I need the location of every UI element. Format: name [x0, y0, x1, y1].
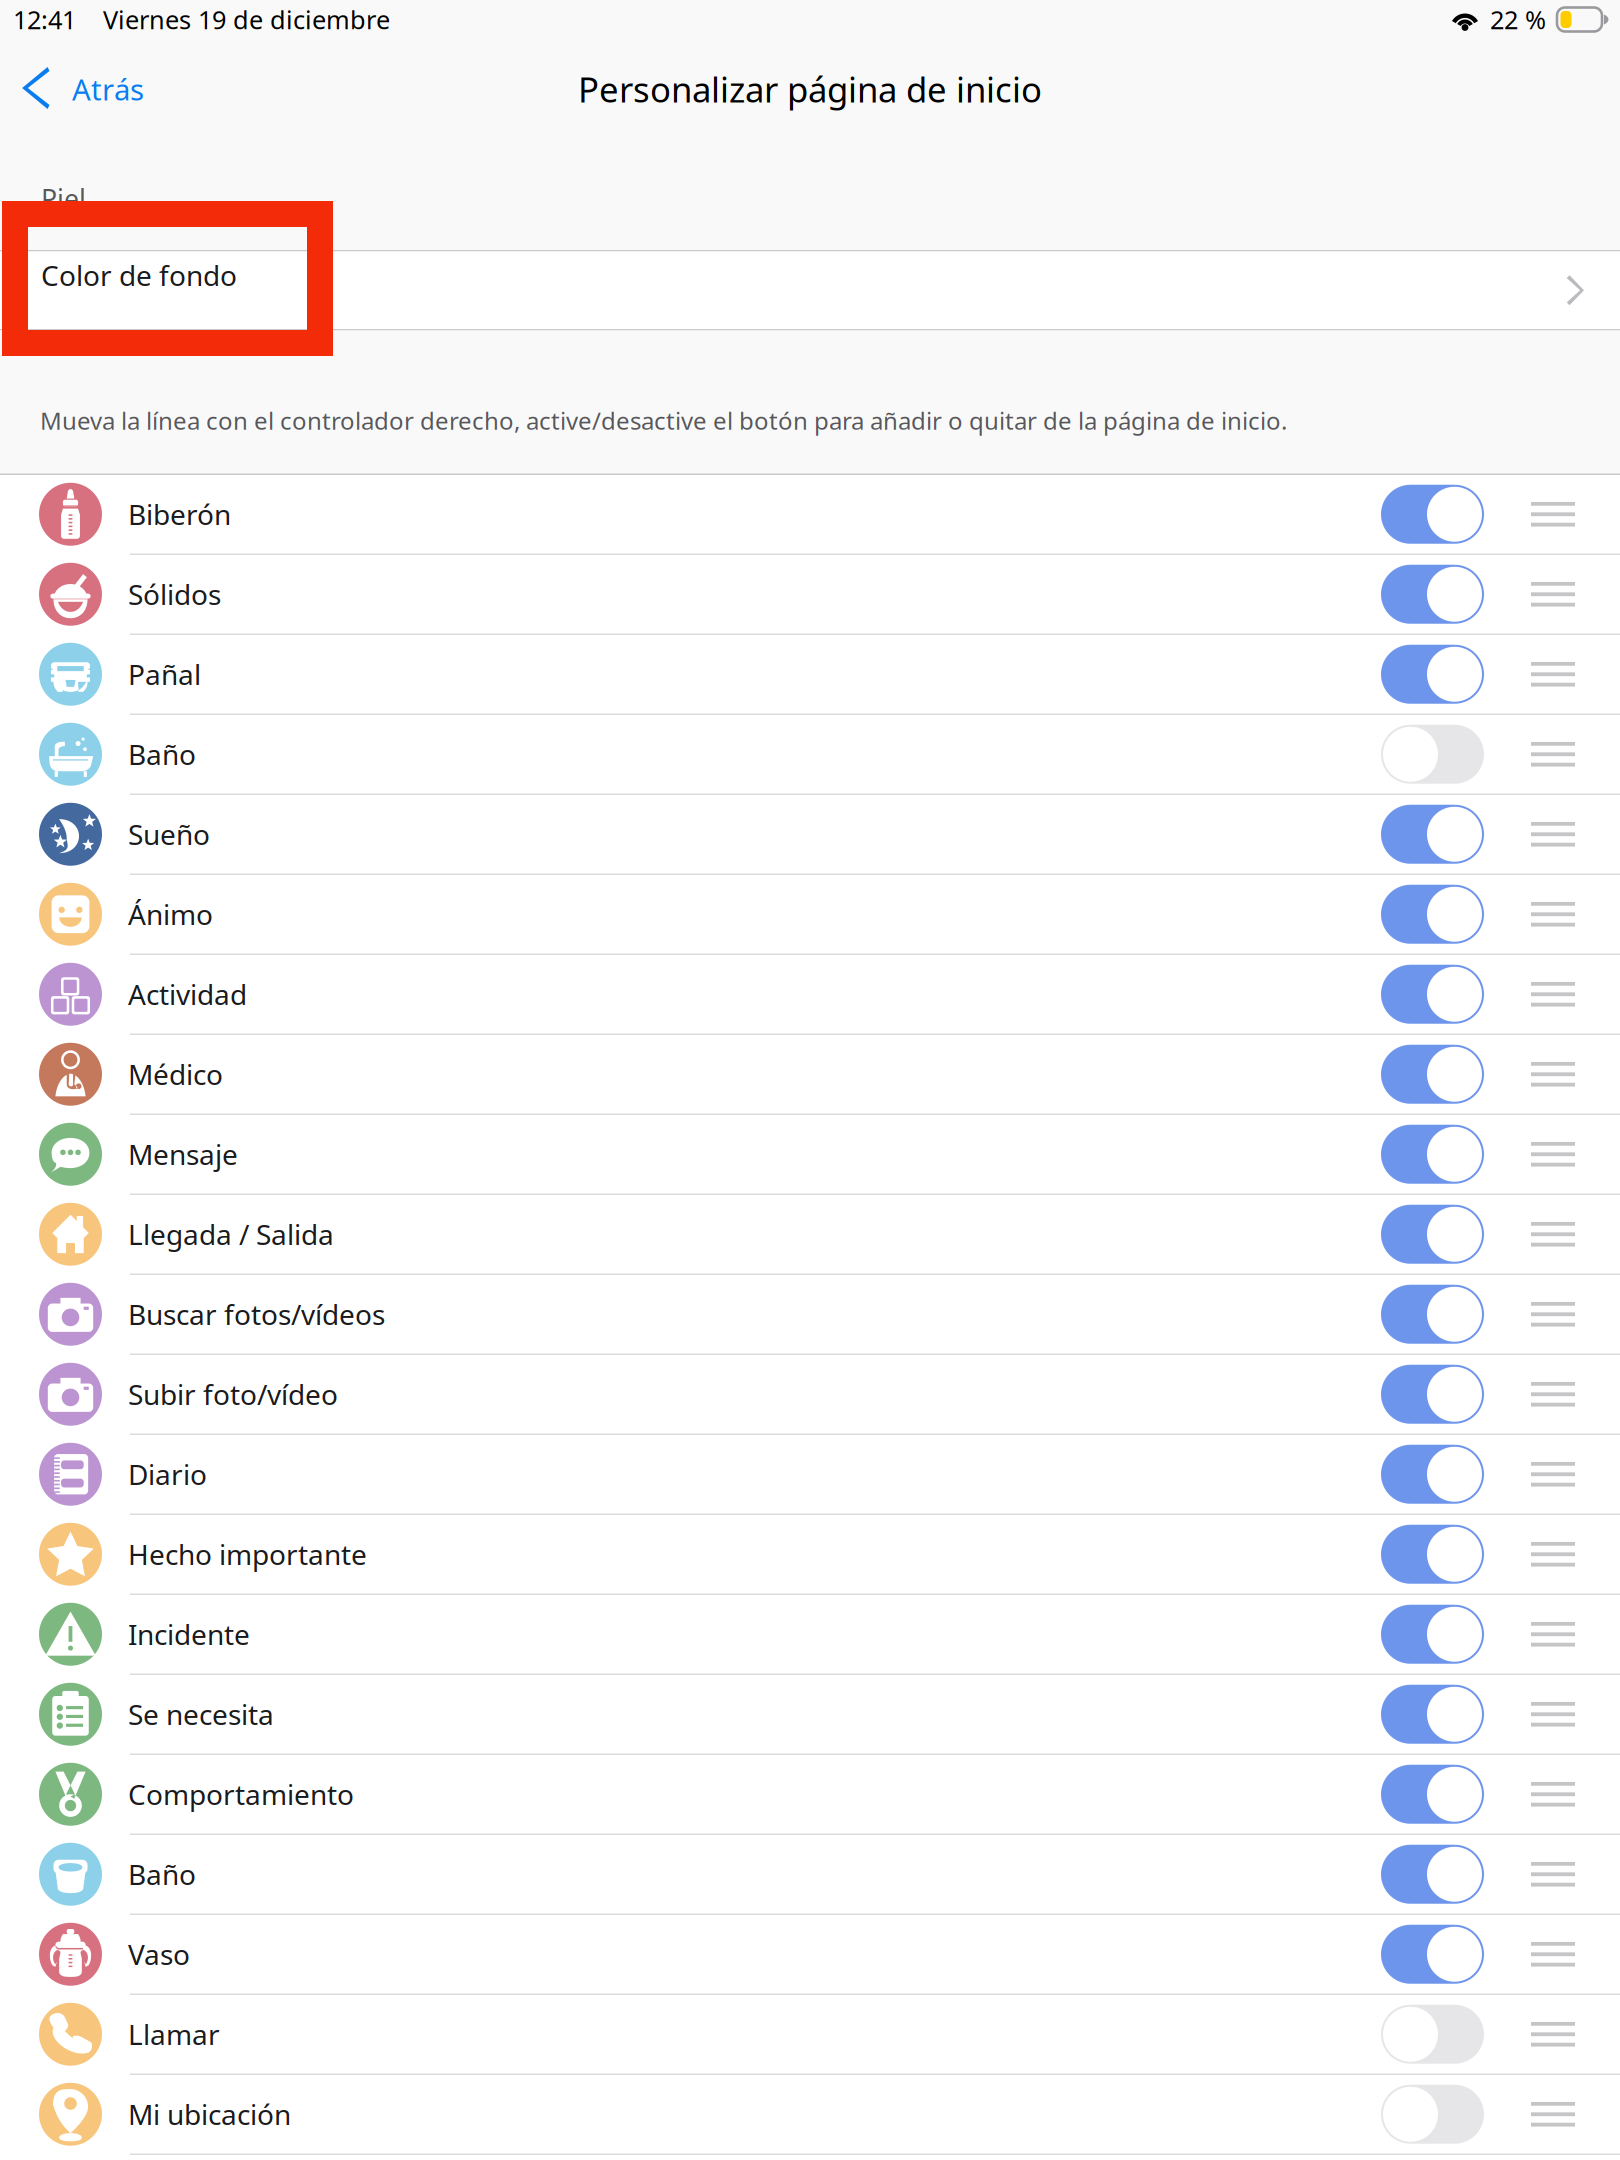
button[interactable]: Sueño [1381, 805, 1484, 864]
button[interactable]: Mi ubicación [1381, 2085, 1484, 2144]
button[interactable]: Reordenar Sueño [1484, 795, 1620, 873]
staticText: Viernes 19 de diciembre [103, 3, 390, 36]
button[interactable]: Buscar fotos/vídeos [1381, 1285, 1484, 1344]
button[interactable]: Pañal [1381, 645, 1484, 704]
staticText: Diario [128, 1456, 207, 1493]
button[interactable]: Reordenar Comportamiento [1484, 1755, 1620, 1833]
button[interactable]: Médico [1381, 1045, 1484, 1104]
staticText: Personalizar página de inicio [578, 66, 1042, 112]
button[interactable]: Reordenar Llegada / Salida [1484, 1195, 1620, 1273]
button[interactable]: Baño [1381, 725, 1484, 784]
staticText: Color de fondo [41, 257, 237, 294]
button[interactable]: Hecho importante [1381, 1525, 1484, 1584]
button[interactable]: Biberón [1381, 485, 1484, 544]
button[interactable]: Vaso [1381, 1925, 1484, 1984]
button[interactable]: Actividad [1381, 965, 1484, 1024]
button[interactable]: Reordenar Diario [1484, 1435, 1620, 1513]
staticText: Subir foto/vídeo [128, 1376, 338, 1413]
button[interactable]: Reordenar Sólidos [1484, 555, 1620, 633]
button[interactable]: Llegada / Salida [1381, 1205, 1484, 1264]
staticText: Llegada / Salida [128, 1216, 334, 1253]
staticText: Se necesita [128, 1696, 274, 1733]
staticText: Sólidos [128, 576, 221, 613]
button[interactable]: Reordenar Biberón [1484, 475, 1620, 553]
staticText: Biberón [128, 496, 231, 533]
staticText: Piel [41, 181, 86, 216]
button[interactable]: Reordenar Baño [1484, 715, 1620, 793]
button[interactable]: Sólidos [1381, 565, 1484, 624]
staticText: Comportamiento [128, 1776, 354, 1813]
button[interactable]: Reordenar Actividad [1484, 955, 1620, 1033]
staticText: Baño [128, 736, 196, 773]
staticText: 12:41 [13, 3, 76, 36]
button[interactable]: Baño [1381, 1845, 1484, 1904]
button[interactable]: Reordenar Pañal [1484, 635, 1620, 713]
button[interactable]: Diario [1381, 1445, 1484, 1504]
button[interactable]: Reordenar Se necesita [1484, 1675, 1620, 1753]
button[interactable]: Subir foto/vídeo [1381, 1365, 1484, 1424]
staticText: Médico [128, 1056, 223, 1093]
button[interactable]: Reordenar Subir foto/vídeo [1484, 1355, 1620, 1433]
button[interactable]: Reordenar Vaso [1484, 1915, 1620, 1993]
button[interactable]: Comportamiento [1381, 1765, 1484, 1824]
button[interactable]: Reordenar Médico [1484, 1035, 1620, 1113]
button[interactable]: Reordenar Mi ubicación [1484, 2075, 1620, 2153]
staticText: Llamar [128, 2016, 220, 2053]
button[interactable]: Atrás [0, 39, 210, 139]
staticText: Hecho importante [128, 1536, 367, 1573]
staticText: Vaso [128, 1936, 190, 1973]
staticText: Mi ubicación [128, 2096, 291, 2133]
button[interactable]: Reordenar Buscar fotos/vídeos [1484, 1275, 1620, 1353]
staticText: Atrás [72, 69, 144, 108]
button[interactable]: Reordenar Mensaje [1484, 1115, 1620, 1193]
button[interactable]: Se necesita [1381, 1685, 1484, 1744]
button[interactable]: Mensaje [1381, 1125, 1484, 1184]
button[interactable]: Reordenar Llamar [1484, 1995, 1620, 2073]
button[interactable]: Reordenar Hecho importante [1484, 1515, 1620, 1593]
button[interactable]: Reordenar Incidente [1484, 1595, 1620, 1673]
staticText: Incidente [128, 1616, 250, 1653]
staticText: Buscar fotos/vídeos [128, 1296, 385, 1333]
staticText: Actividad [128, 976, 247, 1013]
staticText: Mensaje [128, 1136, 238, 1173]
button[interactable]: Reordenar Ánimo [1484, 875, 1620, 953]
staticText: Baño [128, 1856, 196, 1893]
button[interactable]: Color de fondo [0, 251, 1620, 329]
staticText: 22 % [1490, 3, 1546, 36]
staticText: Ánimo [128, 896, 213, 933]
staticText: Pañal [128, 656, 201, 693]
button[interactable]: Ánimo [1381, 885, 1484, 944]
button[interactable]: Llamar [1381, 2005, 1484, 2064]
button[interactable]: Reordenar Baño [1484, 1835, 1620, 1913]
button[interactable]: Incidente [1381, 1605, 1484, 1664]
staticText: Mueva la línea con el controlador derech… [40, 404, 1287, 436]
staticText: Sueño [128, 816, 210, 853]
